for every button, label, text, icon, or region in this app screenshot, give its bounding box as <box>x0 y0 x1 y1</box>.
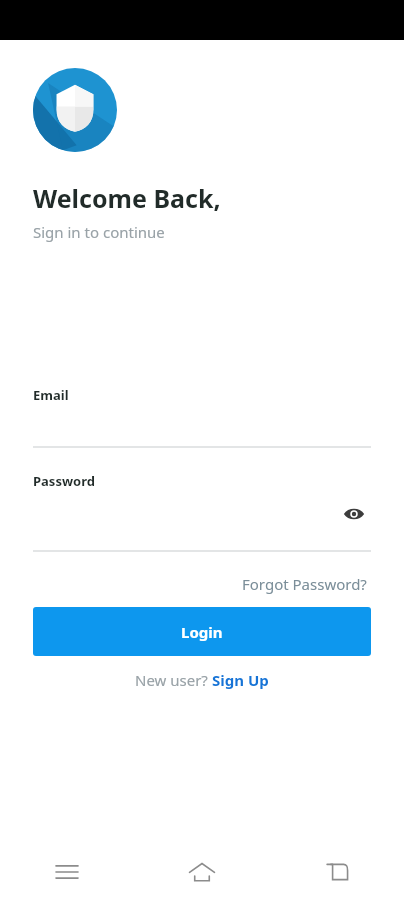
button[interactable]: Show password <box>337 497 371 531</box>
button[interactable]: Forgot Password? <box>238 570 371 598</box>
button[interactable]: Home <box>134 844 269 900</box>
staticText: Password <box>33 472 95 490</box>
staticText: Sign Up <box>212 670 269 690</box>
button[interactable]: Login <box>33 607 371 656</box>
staticText: Forgot Password? <box>242 574 367 594</box>
staticText: Login <box>181 622 223 642</box>
staticText: New user? <box>135 670 212 690</box>
staticText: Sign in to continue <box>33 222 165 242</box>
staticText: Email <box>33 386 69 404</box>
button[interactable]: Recent apps <box>0 844 134 900</box>
button[interactable]: Back <box>269 844 404 900</box>
button[interactable]: New user? <box>129 665 275 695</box>
staticText: Welcome Back, <box>33 181 221 215</box>
button[interactable] <box>33 404 371 448</box>
